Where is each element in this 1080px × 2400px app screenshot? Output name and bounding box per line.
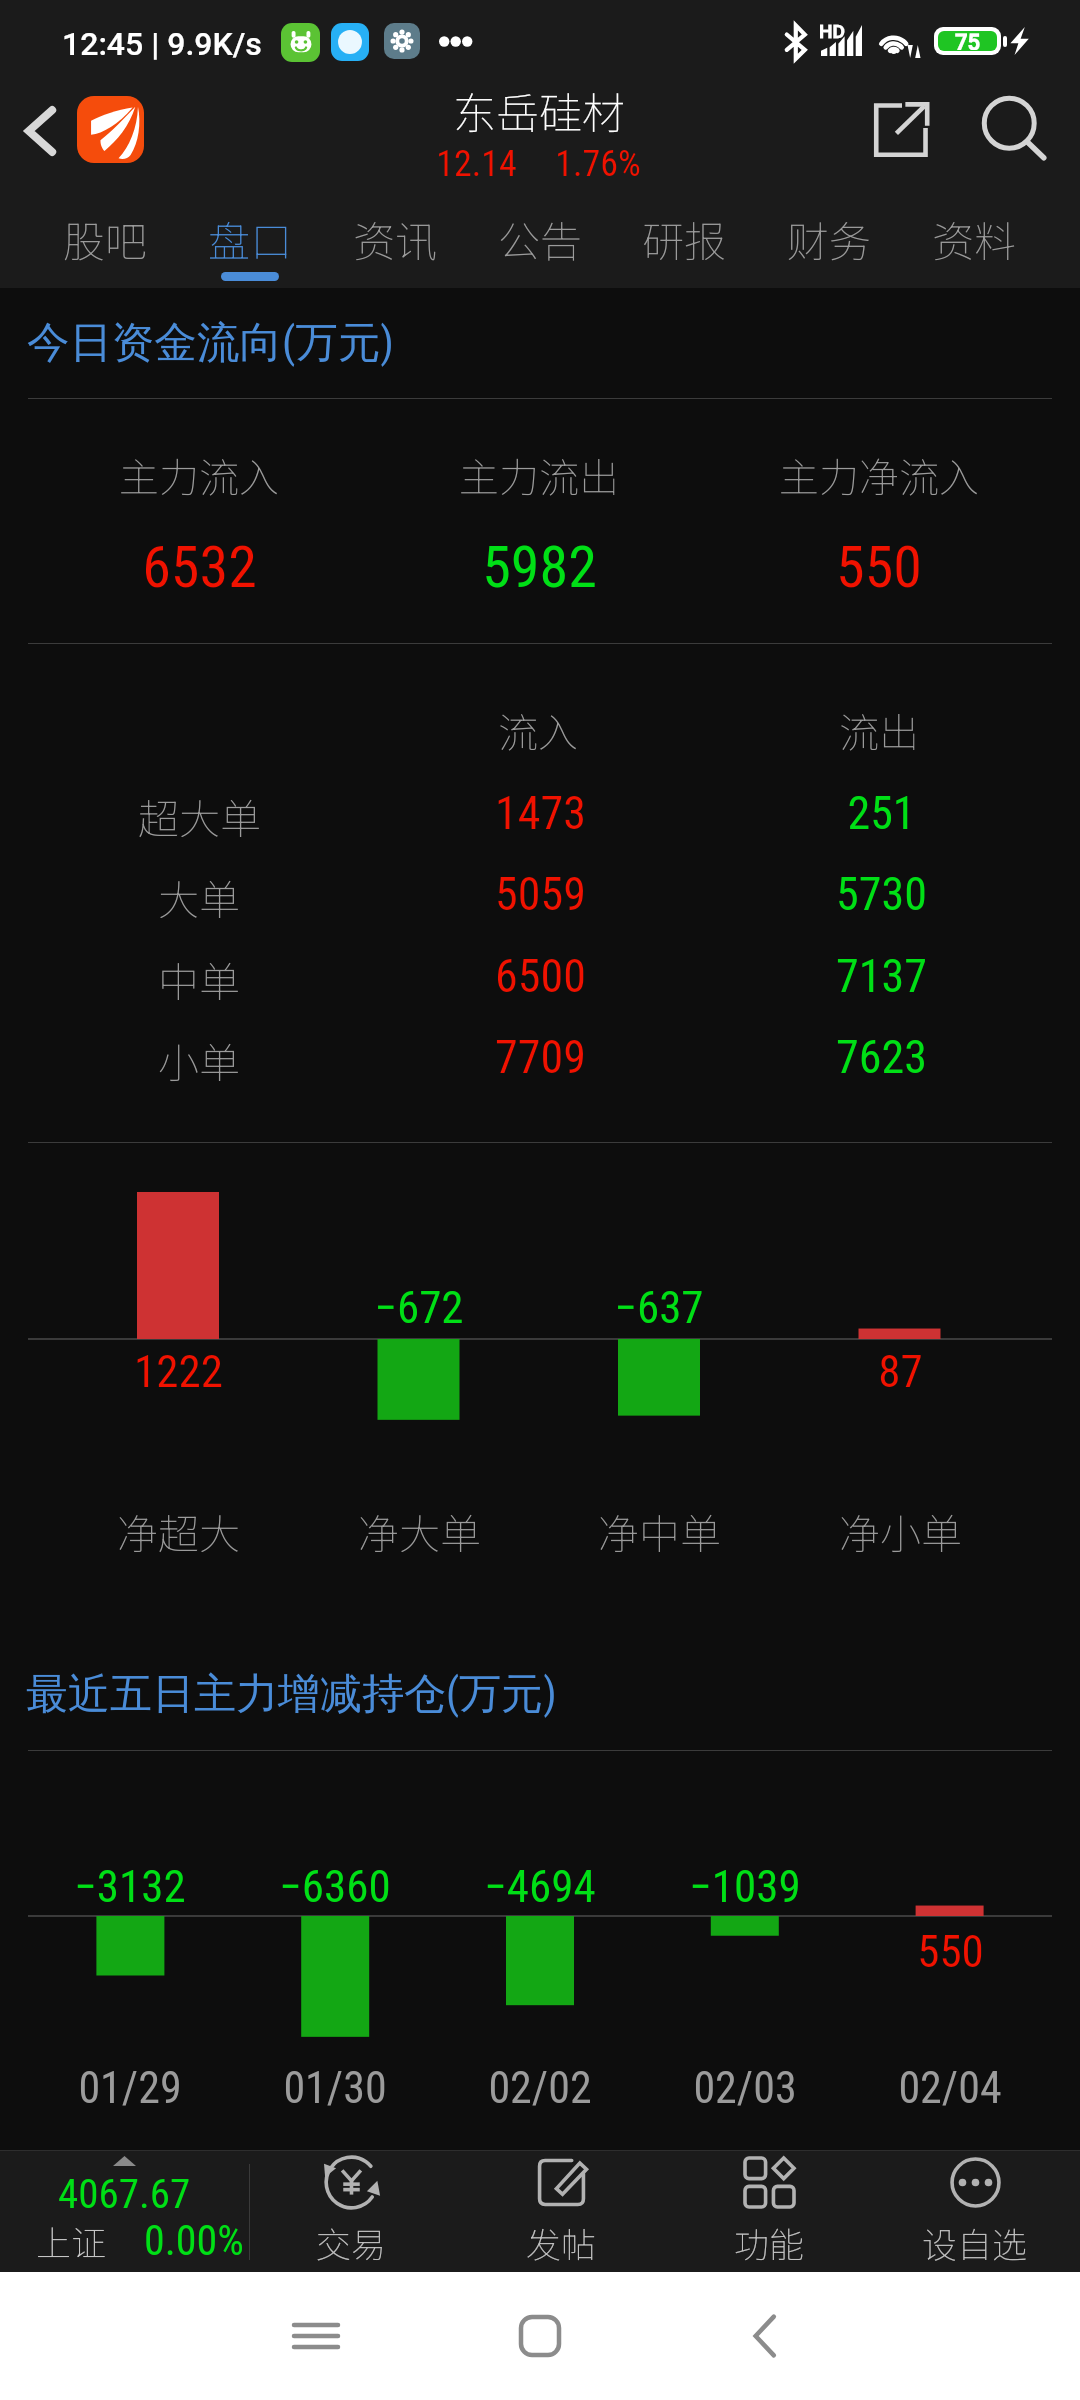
button[interactable]: 发帖 [456,2150,666,2272]
button[interactable]: Back [735,2272,795,2400]
button[interactable]: 资讯 [323,193,468,288]
button[interactable]: 交易 [246,2150,456,2272]
staticText: −6360 [279,1860,391,1913]
button[interactable]: 股吧 [33,193,178,288]
staticText: 中单 [158,949,240,1008]
staticText: 550 [917,1925,984,1978]
staticText: −4694 [484,1860,596,1913]
button[interactable]: 盘口 [178,193,323,288]
staticText: 主力净流入 [779,446,979,504]
staticText: 5982 [482,533,597,601]
button[interactable]: East Money home [77,96,144,163]
staticText: 75 [955,30,981,50]
staticText: 净中单 [598,1501,721,1560]
staticText: −1039 [689,1860,801,1913]
staticText: −672 [374,1281,464,1334]
staticText: 资讯 [353,208,438,269]
staticText: 盘口 [208,208,293,269]
staticText: 5730 [836,867,927,921]
button[interactable]: 设自选 [870,2150,1080,2272]
staticText: 财务 [787,208,872,269]
staticText: 12.14 [436,143,517,185]
staticText: 7709 [495,1030,586,1084]
staticText: 净超大 [117,1501,240,1560]
staticText: 最近五日主力增减持仓(万元) [26,1668,557,1721]
button[interactable]: Home [510,2272,570,2400]
staticText: 发帖 [526,2217,597,2268]
staticText: 02/04 [898,2062,1002,2114]
staticText: 6532 [142,533,257,601]
staticText: 550 [836,533,922,601]
staticText: 12:45 | 9.9K/s [62,25,262,63]
staticText: 交易 [316,2217,387,2268]
button[interactable]: 公告 [468,193,613,288]
staticText: 01/29 [78,2062,182,2114]
staticText: 251 [847,786,916,840]
staticText: 87 [878,1345,923,1398]
staticText: 流出 [839,701,919,759]
staticText: 7137 [836,949,927,1003]
staticText: 股吧 [63,208,148,269]
button[interactable]: Back [8,99,72,163]
button[interactable]: 财务 [757,193,902,288]
staticText: 净大单 [358,1501,481,1560]
button[interactable]: 资料 [902,193,1047,288]
staticText: 今日资金流向(万元) [27,316,394,370]
button[interactable]: Search [977,91,1053,167]
staticText: −3132 [74,1860,186,1913]
staticText: 研报 [642,208,727,269]
button[interactable]: Share [864,91,940,167]
staticText: 大单 [158,867,240,926]
button[interactable]: 研报 [612,193,757,288]
staticText: −637 [614,1281,704,1334]
staticText: 资料 [932,208,1017,269]
staticText: 6500 [495,949,586,1003]
button[interactable]: Recent apps [286,2272,346,2400]
staticText: 小单 [158,1030,240,1089]
staticText: HD [819,20,845,42]
staticText: 主力流入 [119,446,279,504]
staticText: 主力流出 [459,446,619,504]
staticText: 02/03 [693,2062,797,2114]
staticText: 1.76% [555,143,641,185]
staticText: 4067.67 [58,2170,191,2218]
staticText: 02/02 [488,2062,592,2114]
staticText: 超大单 [138,786,261,845]
staticText: 1222 [134,1345,223,1398]
staticText: 流入 [498,701,578,759]
staticText: 1473 [495,786,586,840]
button[interactable]: 4067.67 [0,2150,249,2272]
staticText: 公告 [498,208,583,269]
staticText: 01/30 [283,2062,387,2114]
staticText: 7623 [836,1030,927,1084]
staticText: 功能 [734,2217,805,2268]
staticText: 东岳硅材 [453,79,625,141]
staticText: 设自选 [922,2217,1028,2268]
staticText: 净小单 [839,1501,962,1560]
button[interactable]: 功能 [664,2150,874,2272]
staticText: 上证 [36,2215,107,2266]
staticText: 0.00% [144,2216,244,2265]
staticText: 5059 [495,867,586,921]
